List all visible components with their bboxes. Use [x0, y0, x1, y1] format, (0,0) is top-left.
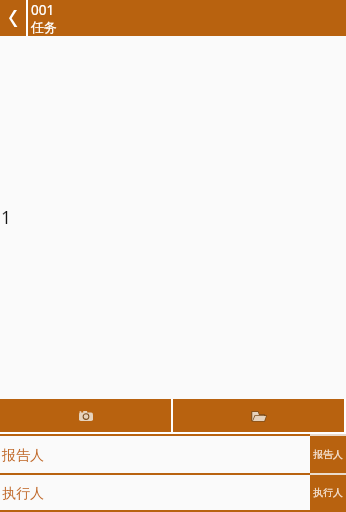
button[interactable]: Back — [0, 0, 26, 36]
staticText: 1 — [1, 205, 12, 229]
staticText: 报告人 — [2, 447, 44, 465]
button[interactable]: Open folder — [173, 399, 344, 432]
staticText: 001 — [31, 1, 55, 19]
staticText: 报告人 — [313, 448, 343, 461]
staticText: 任务 — [31, 19, 57, 35]
staticText: 执行人 — [2, 485, 44, 503]
button[interactable]: 报告人 — [0, 436, 346, 473]
button[interactable]: Take photo — [0, 399, 171, 432]
button[interactable]: 执行人 — [0, 475, 346, 510]
staticText: 执行人 — [313, 486, 343, 499]
